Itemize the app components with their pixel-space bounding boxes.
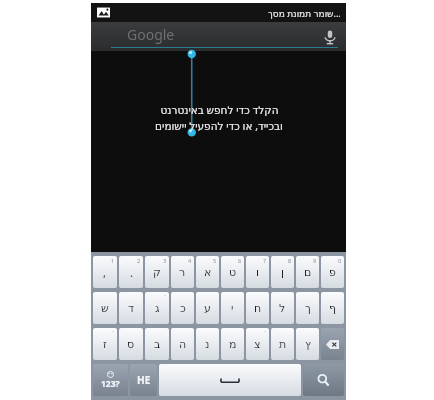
button[interactable]: ה	[171, 328, 194, 360]
button[interactable]: י	[221, 292, 244, 324]
staticText: ע	[204, 302, 211, 315]
staticText: 7	[263, 257, 267, 264]
staticText: 1	[111, 257, 115, 264]
button[interactable]: ר	[171, 256, 194, 288]
button[interactable]: פ	[321, 256, 344, 288]
staticText: ל	[279, 302, 286, 315]
button[interactable]: ס	[119, 328, 143, 360]
button[interactable]: ע	[196, 292, 219, 324]
staticText: ף	[329, 302, 337, 315]
button[interactable]: Google	[91, 22, 346, 51]
staticText: ק	[153, 266, 161, 279]
button[interactable]: ג	[145, 292, 169, 324]
staticText: 2	[137, 257, 141, 264]
staticText: 6	[238, 257, 242, 264]
button[interactable]: Search	[303, 364, 344, 396]
button[interactable]: צ	[246, 328, 269, 360]
staticText: 4	[188, 257, 192, 264]
button[interactable]: Numbers and symbols	[93, 364, 128, 396]
staticText: ט	[229, 266, 237, 279]
button[interactable]: ך	[296, 292, 319, 324]
staticText: 5	[213, 257, 217, 264]
button[interactable]: ,	[93, 256, 117, 288]
button[interactable]: ד	[119, 292, 143, 324]
button[interactable]: ח	[246, 292, 269, 324]
staticText: HE	[137, 373, 151, 387]
button[interactable]: ת	[271, 328, 294, 360]
button[interactable]: נ	[196, 328, 219, 360]
staticText: ץ	[305, 338, 311, 351]
staticText: ח	[254, 302, 262, 315]
staticText: הקלד כדי לחפש באינטרנט	[160, 103, 279, 117]
staticText: ו	[256, 266, 259, 279]
button[interactable]: ם	[296, 256, 319, 288]
staticText: ך	[305, 302, 311, 315]
other: Screenshot notification	[97, 6, 110, 19]
staticText: 123?	[101, 378, 120, 390]
staticText: שומר תמונת מסך...	[268, 7, 341, 19]
staticText: ׳	[112, 329, 115, 335]
button[interactable]: ף	[321, 292, 344, 324]
button[interactable]: ל	[271, 292, 294, 324]
button[interactable]: .	[119, 256, 143, 288]
staticText: ה	[179, 338, 187, 351]
staticText: 3	[163, 257, 167, 264]
staticText: ר	[179, 266, 186, 279]
staticText: ובכייד, או כדי להפעיל יישומים	[155, 119, 283, 133]
button[interactable]: ז	[93, 328, 117, 360]
staticText: ׳	[264, 329, 267, 335]
staticText: ן	[281, 266, 284, 279]
button[interactable]: כ	[171, 292, 194, 324]
staticText: מ	[229, 338, 237, 351]
staticText: פ	[329, 266, 336, 279]
staticText: ס	[127, 338, 135, 351]
button[interactable]: א	[196, 256, 219, 288]
staticText: ש	[101, 302, 109, 315]
staticText: 8	[288, 257, 292, 264]
button[interactable]: HE	[130, 364, 157, 396]
staticText: .	[130, 265, 133, 280]
staticText: ג	[155, 302, 160, 315]
button[interactable]: Backspace	[321, 328, 344, 360]
staticText: א	[204, 266, 212, 279]
button[interactable]: ן	[271, 256, 294, 288]
staticText: ז	[103, 338, 107, 351]
button[interactable]: ק	[145, 256, 169, 288]
staticText: כ	[180, 302, 186, 315]
staticText: ׳	[164, 293, 167, 299]
staticText: ת	[279, 338, 287, 351]
staticText: ב	[154, 338, 161, 351]
button[interactable]: ץ	[296, 328, 319, 360]
button[interactable]: Voice search	[322, 29, 338, 45]
button[interactable]: ב	[145, 328, 169, 360]
staticText: צ	[254, 338, 261, 351]
staticText: ם	[304, 266, 312, 279]
staticText: י	[231, 302, 234, 315]
staticText: 9	[313, 257, 317, 264]
staticText: 0	[338, 257, 342, 264]
staticText: ,	[103, 265, 107, 280]
staticText: ד	[128, 302, 135, 315]
button[interactable]: ו	[246, 256, 269, 288]
button[interactable]: מ	[221, 328, 244, 360]
button[interactable]: ש	[93, 292, 117, 324]
staticText: Google	[127, 25, 175, 44]
staticText: נ	[205, 338, 210, 351]
button[interactable]: ט	[221, 256, 244, 288]
button[interactable]: Space	[159, 364, 301, 396]
